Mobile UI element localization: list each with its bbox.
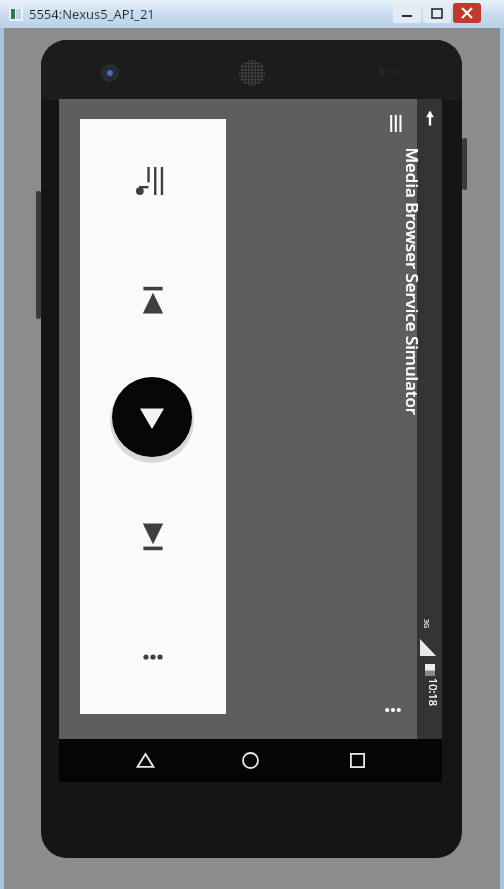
staticText: 5554:Nexus5_API_21 bbox=[29, 5, 155, 23]
button[interactable]: Recent apps bbox=[325, 739, 390, 782]
button[interactable]: Window button bbox=[453, 3, 481, 23]
button[interactable]: More bbox=[128, 632, 178, 682]
button[interactable]: Home bbox=[218, 739, 283, 782]
button[interactable]: Queue bbox=[128, 156, 178, 206]
staticText: Media Browser Service Simulator bbox=[400, 147, 423, 415]
button[interactable]: Play bbox=[112, 377, 192, 457]
button[interactable]: Window button bbox=[393, 3, 421, 23]
staticText: 10:18 bbox=[426, 678, 441, 707]
staticText: 3G bbox=[421, 619, 431, 629]
button[interactable]: More options bbox=[373, 690, 413, 730]
button[interactable]: Navigate up bbox=[418, 103, 442, 133]
button[interactable]: Skip to previous bbox=[128, 275, 178, 325]
button[interactable]: Back bbox=[113, 739, 178, 782]
button[interactable]: Window button bbox=[423, 3, 451, 23]
button[interactable]: Skip to next bbox=[128, 512, 178, 562]
button[interactable]: Open navigation drawer bbox=[378, 108, 408, 138]
